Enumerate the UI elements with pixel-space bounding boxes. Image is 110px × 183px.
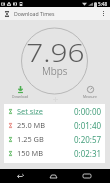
button[interactable]: Recent apps [70,169,103,183]
button[interactable]: 1.25 GB [4,132,105,146]
button[interactable]: 150 MB [4,146,105,160]
staticText: 1.25 GB [17,134,44,144]
button[interactable]: More options [96,7,110,20]
staticText: 0:02:31 [74,148,102,159]
staticText: 0:01:40 [74,120,102,131]
staticText: 5:48 [98,1,108,7]
staticText: Mbps [42,64,68,78]
staticText: Download [12,94,29,99]
button[interactable]: Download times [0,7,14,20]
button[interactable]: Home [37,169,70,183]
staticText: Measure [83,94,97,99]
staticText: Set size [17,106,43,116]
button[interactable]: Set size [4,104,105,118]
button[interactable]: 25.0 MB [4,118,105,132]
button[interactable]: Measure [70,84,110,100]
staticText: 25.0 MB [17,120,46,130]
staticText: 7.96 [26,35,85,69]
staticText: 0:00:00 [74,106,102,117]
button[interactable]: Add [53,97,58,102]
button[interactable]: Download [0,84,40,100]
button[interactable]: Back [4,169,37,183]
staticText: Download Times [14,10,55,17]
staticText: 150 MB [17,148,44,158]
staticText: 0:20:57 [74,134,102,145]
